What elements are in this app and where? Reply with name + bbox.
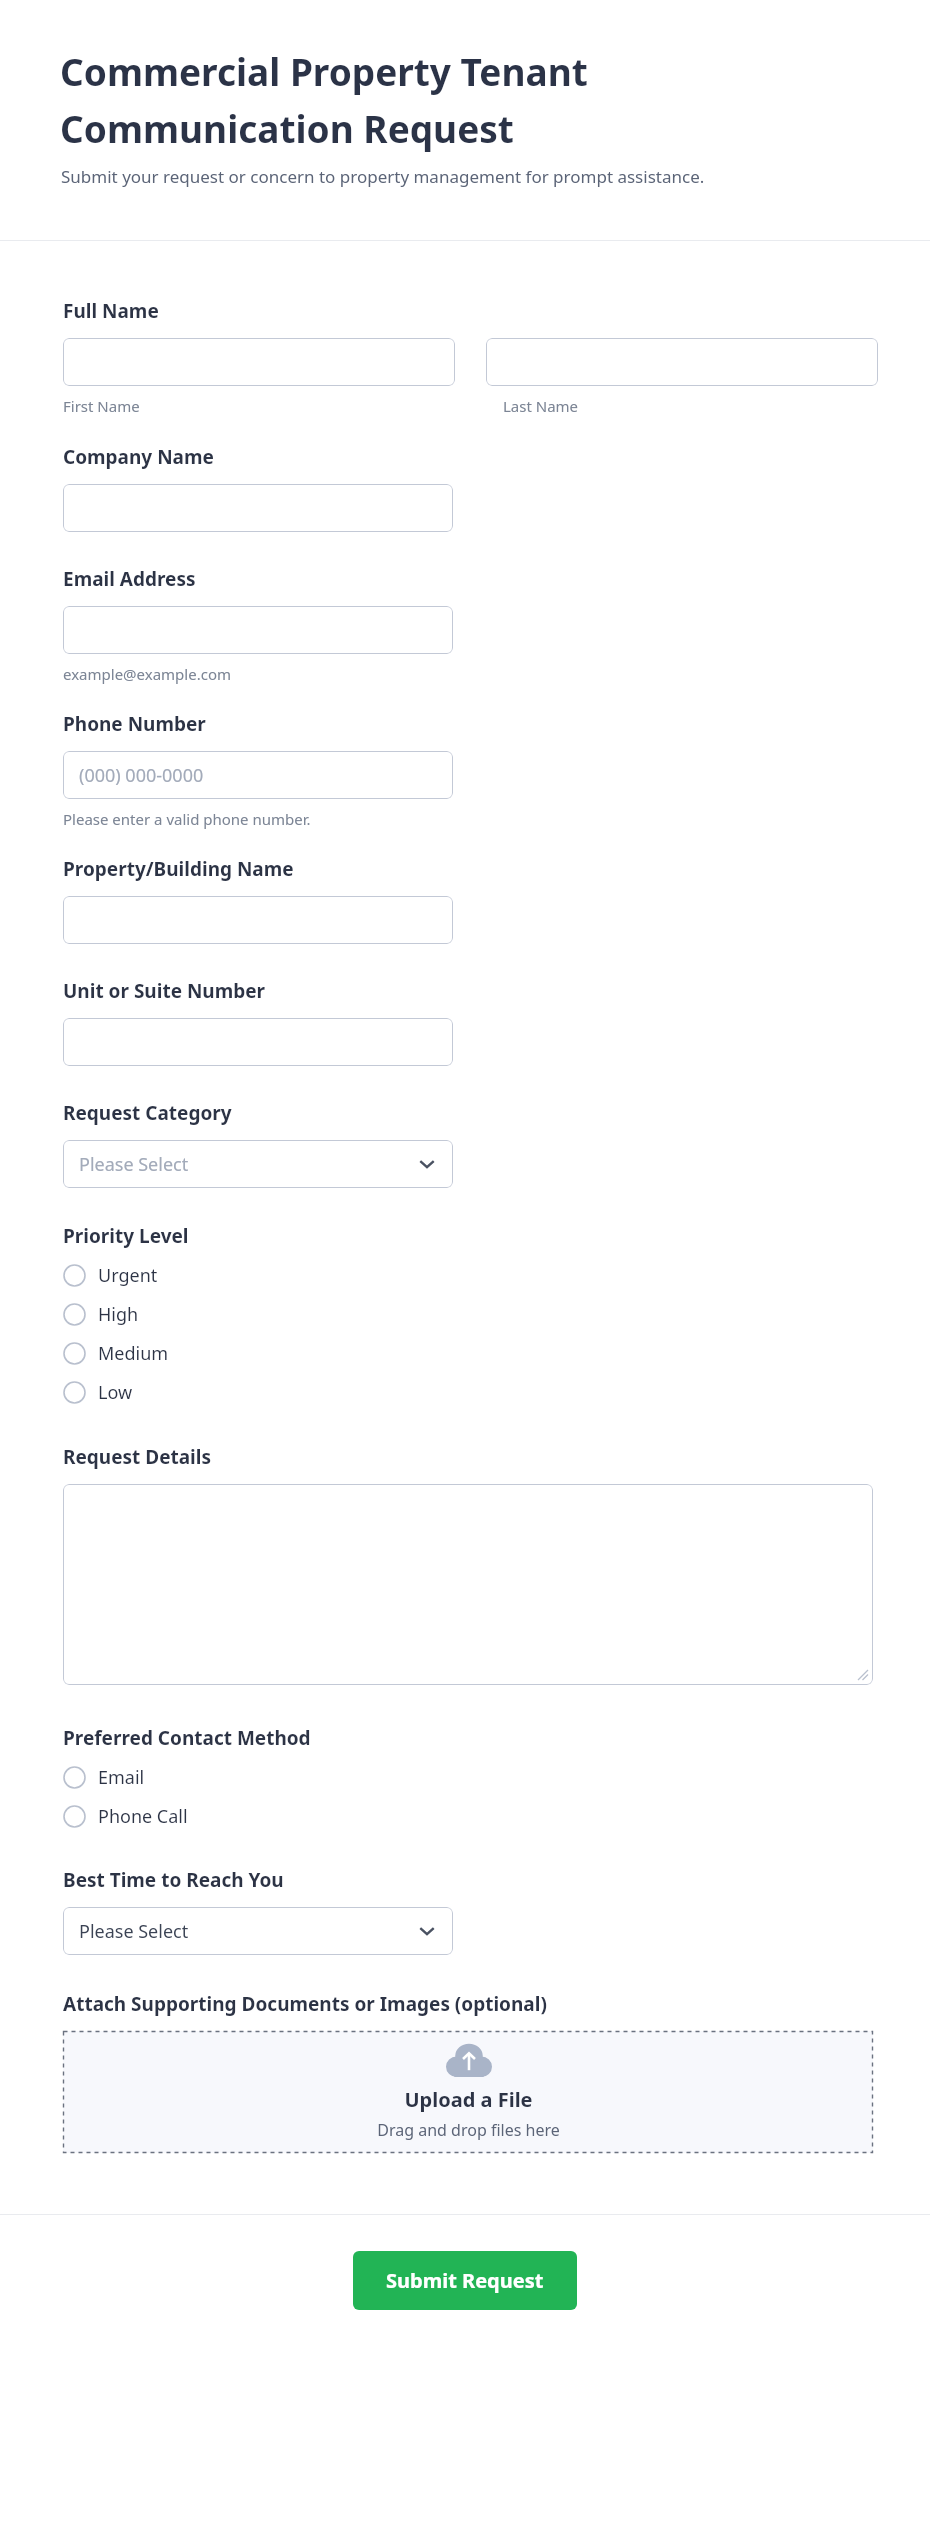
staticText: Attach Supporting Documents or Images (o… [63, 1991, 547, 2017]
button[interactable] [63, 338, 455, 386]
button[interactable]: Urgent [63, 1260, 158, 1290]
staticText: Phone Number [63, 711, 206, 737]
staticText: Urgent [98, 1263, 158, 1288]
button[interactable] [63, 1484, 873, 1685]
staticText: Please Select [79, 1919, 189, 1944]
staticText: Email [98, 1765, 145, 1790]
button[interactable] [63, 1018, 453, 1066]
staticText: Property/Building Name [63, 856, 294, 882]
staticText: example@example.com [63, 664, 231, 684]
button[interactable]: Submit Request [353, 2251, 577, 2310]
staticText: First Name [63, 396, 140, 416]
staticText: Preferred Contact Method [63, 1725, 311, 1751]
staticText: Drag and drop files here [377, 2119, 560, 2141]
staticText: Submit your request or concern to proper… [61, 165, 705, 188]
staticText: Full Name [63, 298, 159, 324]
staticText: High [98, 1302, 139, 1327]
staticText: Commercial Property Tenant [60, 46, 588, 96]
staticText: (000) 000-0000 [79, 763, 204, 788]
staticText: Request Details [63, 1444, 211, 1470]
staticText: Please Select [79, 1152, 189, 1177]
button[interactable]: Please Select [63, 1140, 453, 1188]
staticText: Best Time to Reach You [63, 1867, 284, 1893]
button[interactable]: Medium [63, 1338, 169, 1368]
button[interactable] [63, 896, 453, 944]
button[interactable] [486, 338, 878, 386]
button[interactable]: (000) 000-0000 [63, 751, 453, 799]
staticText: Low [98, 1380, 133, 1405]
staticText: Communication Request [60, 103, 514, 153]
button[interactable]: Upload a File [63, 2031, 873, 2153]
staticText: Medium [98, 1341, 169, 1366]
staticText: Company Name [63, 444, 214, 470]
button[interactable]: Please Select [63, 1907, 453, 1955]
button[interactable] [63, 484, 453, 532]
staticText: Priority Level [63, 1223, 189, 1249]
staticText: Unit or Suite Number [63, 978, 266, 1004]
button[interactable]: Phone Call [63, 1801, 188, 1831]
staticText: Last Name [503, 396, 579, 416]
staticText: Email Address [63, 566, 196, 592]
staticText: Submit Request [386, 2267, 544, 2294]
button[interactable] [63, 606, 453, 654]
button[interactable]: Low [63, 1377, 133, 1407]
staticText: Upload a File [404, 2086, 533, 2113]
button[interactable]: High [63, 1299, 139, 1329]
staticText: Phone Call [98, 1804, 188, 1829]
button[interactable]: Email [63, 1762, 145, 1792]
staticText: Please enter a valid phone number. [63, 809, 311, 829]
staticText: Request Category [63, 1100, 232, 1126]
